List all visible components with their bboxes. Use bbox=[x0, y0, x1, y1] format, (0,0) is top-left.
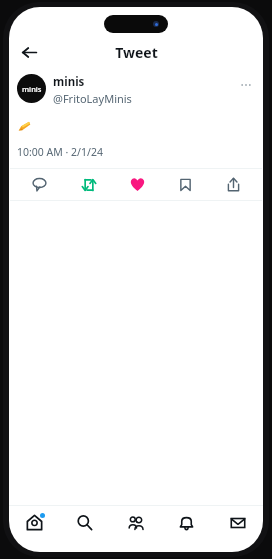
button[interactable]: Retweet bbox=[64, 169, 113, 200]
button[interactable]: Messages bbox=[212, 506, 263, 539]
button[interactable]: minis bbox=[17, 74, 46, 103]
button[interactable]: Home bbox=[9, 506, 59, 539]
staticText: minis bbox=[22, 84, 42, 94]
staticText: minis bbox=[53, 74, 85, 90]
button[interactable]: Like bbox=[113, 169, 161, 200]
button[interactable]: Share bbox=[209, 169, 257, 200]
button[interactable]: Notifications bbox=[161, 506, 212, 539]
button[interactable]: minis bbox=[53, 74, 235, 106]
button[interactable]: Communities bbox=[110, 506, 161, 539]
button[interactable]: More options bbox=[235, 74, 257, 96]
staticText: @FritoLayMinis bbox=[53, 91, 132, 106]
button[interactable]: Reply bbox=[15, 169, 64, 200]
button[interactable]: Search bbox=[59, 506, 110, 539]
staticText: 10:00 AM · 2/1/24 bbox=[17, 145, 103, 159]
button[interactable]: Bookmark bbox=[161, 169, 209, 200]
button[interactable]: Back bbox=[15, 38, 43, 66]
staticText: Tweet bbox=[115, 43, 158, 62]
